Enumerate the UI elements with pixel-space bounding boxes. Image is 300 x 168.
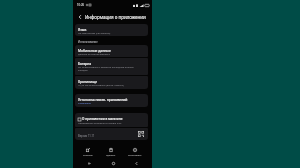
button[interactable]: Установка неизв. приложений: [75, 94, 148, 107]
button[interactable]: Назад: [132, 159, 140, 167]
staticText: 10:26: [77, 3, 85, 7]
staticText: Батарея: [78, 61, 92, 65]
staticText: О приложении в магазине: [82, 117, 123, 121]
staticText: Версия 11.11: [78, 134, 95, 138]
staticText: Остановить: [128, 153, 142, 156]
button[interactable]: Назад: [76, 13, 84, 21]
staticText: Хранилище: [78, 79, 98, 83]
staticText: Удалить: [106, 153, 116, 156]
button[interactable]: Хранилище: [75, 76, 148, 89]
staticText: Мобильные данные: [78, 48, 111, 52]
button[interactable]: О приложении в магазине: [75, 113, 148, 127]
staticText: Открыть: [83, 153, 93, 156]
button[interactable]: Мобильные данные: [75, 45, 148, 57]
button[interactable]: Открыть: [81, 148, 95, 156]
button[interactable]: Версия 11.11: [75, 128, 148, 140]
button[interactable]: Обзор: [85, 159, 93, 167]
button[interactable]: Язык: [75, 24, 148, 36]
staticText: 15,55 МБ использовано (внутр. память): [78, 83, 124, 86]
staticText: Информация о приложении: [85, 14, 146, 20]
button[interactable]: QR-код: [137, 130, 145, 138]
staticText: Данные не использовались: [78, 52, 111, 55]
button[interactable]: Батарея: [75, 58, 148, 75]
staticText: Установка неизв. приложений: [78, 97, 128, 101]
staticText: Приложение загружено в Google Play: [78, 121, 122, 124]
staticText: Язык: [78, 27, 87, 31]
button[interactable]: Остановить: [126, 148, 144, 156]
button[interactable]: Удалить: [104, 148, 118, 156]
staticText: Разрешено: [78, 101, 91, 104]
staticText: 0% использовано с момента последней полн…: [78, 65, 134, 72]
staticText: По умолчанию (системный): [78, 31, 111, 34]
staticText: Использование: [78, 40, 98, 44]
button[interactable]: Главный экран: [109, 159, 117, 167]
